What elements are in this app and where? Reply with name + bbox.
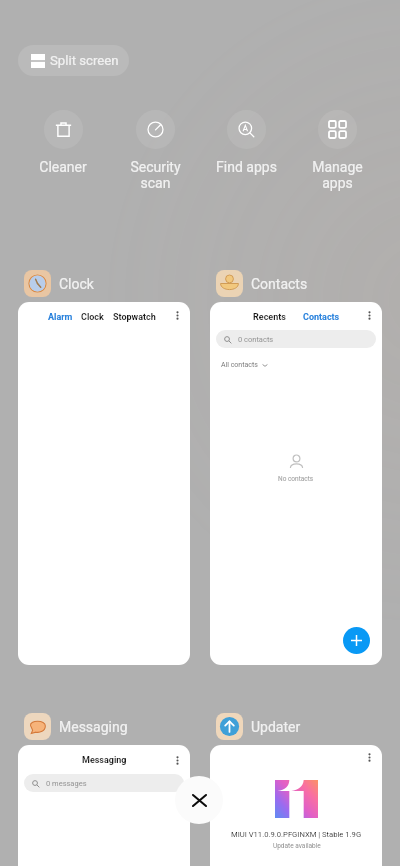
staticText: Stopwatch bbox=[113, 312, 156, 323]
button[interactable]: Messaging bbox=[18, 713, 128, 740]
button[interactable]: Manage apps bbox=[292, 110, 382, 191]
staticText: Find apps bbox=[216, 159, 277, 175]
button[interactable]: Recents bbox=[210, 302, 382, 665]
button[interactable]: Messaging bbox=[18, 745, 190, 866]
button[interactable]: 0 contacts bbox=[216, 330, 376, 348]
staticText: Contacts bbox=[303, 312, 340, 323]
staticText: All contacts bbox=[221, 361, 258, 369]
button[interactable]: Split screen bbox=[18, 45, 129, 76]
staticText: Split screen bbox=[50, 53, 119, 68]
staticText: Contacts bbox=[251, 276, 308, 292]
button[interactable]: More options bbox=[210, 745, 382, 866]
staticText: Clock bbox=[59, 276, 94, 292]
staticText: Cleaner bbox=[39, 159, 87, 175]
staticText: Messaging bbox=[82, 755, 127, 766]
button[interactable]: Find apps bbox=[201, 110, 291, 175]
staticText: Recents bbox=[253, 312, 286, 323]
staticText: Updater bbox=[251, 719, 301, 735]
staticText: Alarm bbox=[48, 312, 73, 323]
other: More options bbox=[176, 311, 179, 320]
button[interactable]: Close all apps bbox=[175, 776, 223, 824]
other: More options bbox=[368, 311, 371, 320]
staticText: Messaging bbox=[59, 719, 128, 735]
button[interactable]: Updater bbox=[210, 713, 301, 740]
staticText: Clock bbox=[81, 312, 104, 323]
staticText: MIUI V11.0.9.0.PFGINXM | Stable 1.9G bbox=[231, 830, 362, 839]
button[interactable]: 0 messages bbox=[24, 774, 184, 792]
button[interactable]: Clock bbox=[18, 270, 94, 297]
button[interactable]: Add contact bbox=[343, 627, 370, 654]
button[interactable]: Alarm bbox=[18, 302, 190, 665]
staticText: Update available bbox=[273, 842, 321, 850]
staticText: 0 messages bbox=[46, 779, 87, 788]
other: More options bbox=[368, 753, 371, 762]
staticText: Security scan bbox=[130, 159, 181, 191]
staticText: Manage apps bbox=[312, 159, 363, 191]
button[interactable]: Cleaner bbox=[18, 110, 108, 175]
staticText: 0 contacts bbox=[238, 335, 274, 344]
button[interactable]: Security scan bbox=[110, 110, 200, 191]
other: More options bbox=[176, 756, 179, 765]
staticText: No contacts bbox=[278, 475, 314, 483]
button[interactable]: Contacts bbox=[210, 270, 308, 297]
